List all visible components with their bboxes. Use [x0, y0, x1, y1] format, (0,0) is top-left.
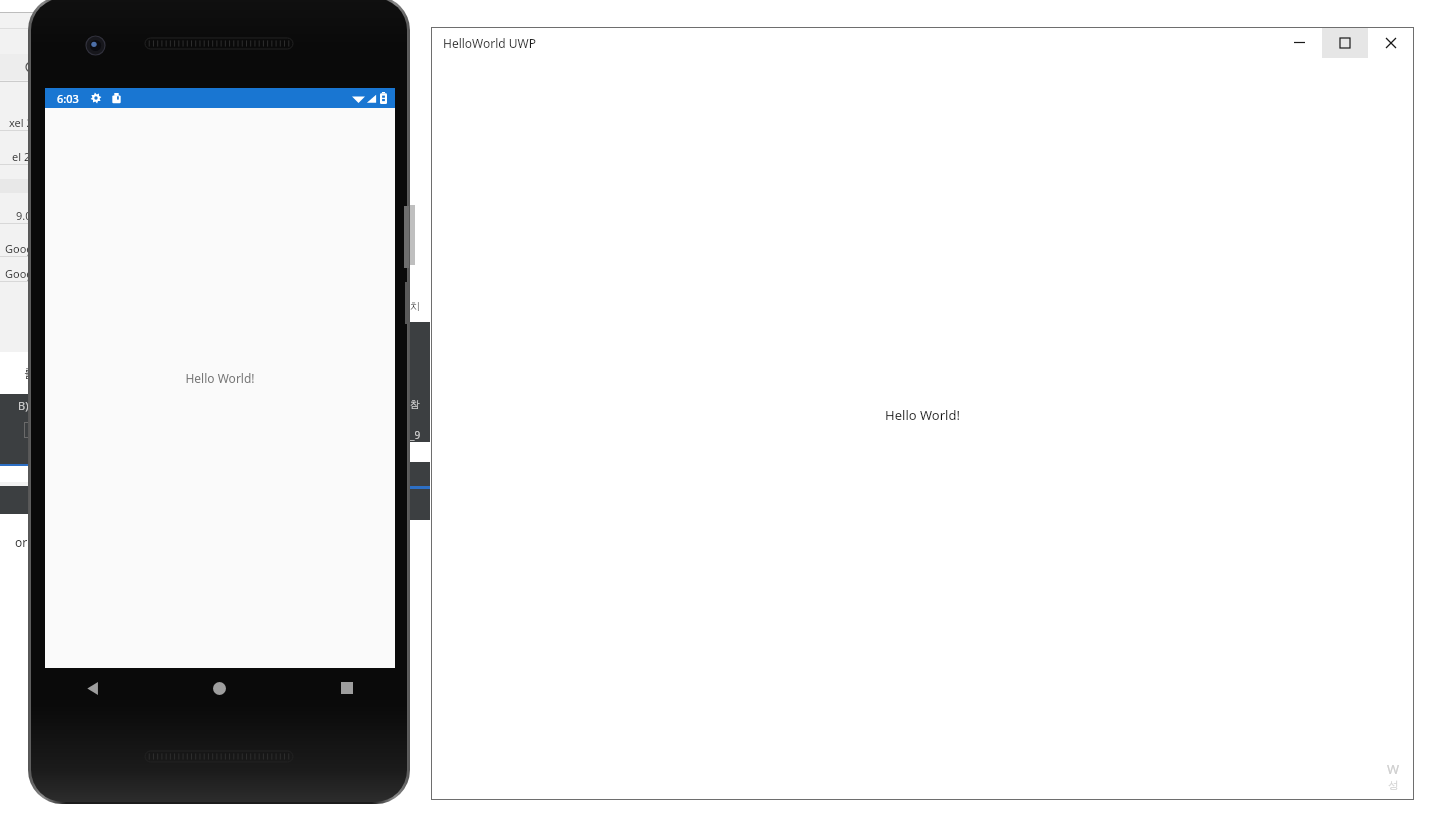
staticText: W [1387, 760, 1400, 778]
staticText: HelloWorld UWP [443, 35, 537, 51]
staticText: 6:03 [57, 91, 79, 106]
staticText: 참 [410, 398, 420, 411]
staticText: xel 2 P [9, 115, 43, 130]
staticText: 를 [24, 364, 43, 380]
button[interactable]: Recent apps [283, 668, 410, 708]
staticText: B) [18, 398, 29, 413]
staticText: Hello World! [885, 406, 960, 424]
button[interactable]: Close [1368, 27, 1414, 58]
staticText: Google [5, 266, 43, 281]
other: Notification [111, 93, 122, 104]
button[interactable]: Minimize [1276, 27, 1322, 58]
staticText: 치 [410, 300, 420, 313]
staticText: 성 [1388, 778, 1399, 792]
staticText: el 2 (+ [12, 149, 43, 164]
staticText: Google [5, 241, 43, 256]
staticText: or로 [15, 534, 40, 550]
staticText: Hello World! [185, 370, 255, 386]
button[interactable]: Home [156, 668, 283, 708]
button[interactable]: Back [28, 668, 156, 708]
button[interactable]: Maximize [1322, 27, 1368, 58]
other: Settings indicator [90, 92, 102, 104]
staticText: 9.0 – [16, 208, 43, 223]
staticText: _9 [410, 428, 421, 442]
staticText: A [38, 423, 46, 438]
